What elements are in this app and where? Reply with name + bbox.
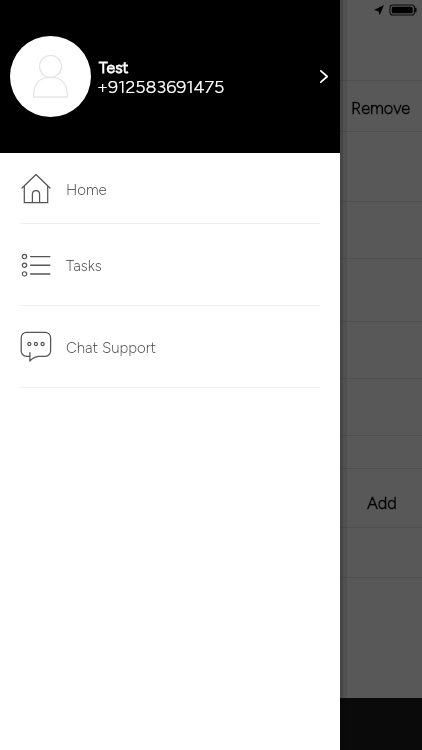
button[interactable] [0, 306, 340, 387]
button[interactable]: Test [0, 0, 340, 153]
button[interactable]: Remove [311, 96, 422, 120]
button[interactable] [0, 224, 340, 305]
staticText: Chat Support [66, 339, 157, 357]
other: Open profile [312, 64, 336, 88]
button[interactable]: Add [312, 491, 422, 515]
staticText: Remove [351, 98, 411, 118]
button[interactable] [0, 153, 340, 223]
staticText: Home [66, 181, 107, 199]
staticText: +912583691475 [97, 76, 225, 97]
other: Battery full [390, 5, 417, 15]
staticText: Test [99, 58, 129, 77]
staticText: Tasks [66, 257, 102, 275]
other: Location active [374, 5, 384, 15]
staticText: Add [367, 493, 397, 513]
